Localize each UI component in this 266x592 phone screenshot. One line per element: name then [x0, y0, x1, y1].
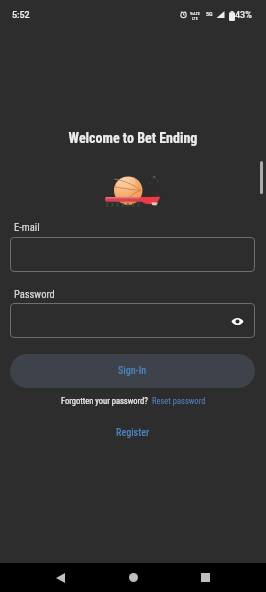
- staticText: Forgotten your password?: [61, 396, 148, 406]
- button[interactable]: Show password: [10, 303, 255, 338]
- staticText: Password: [14, 288, 55, 300]
- staticText: 5G: [206, 10, 213, 17]
- button[interactable]: Register: [116, 427, 150, 439]
- button[interactable]: Recent apps: [185, 563, 225, 592]
- staticText: Welcome to Bet Ending: [0, 130, 266, 146]
- staticText: Reset password: [152, 396, 206, 406]
- button[interactable]: Back: [40, 563, 80, 592]
- staticText: 43%: [235, 10, 252, 21]
- staticText: 5:52: [12, 10, 30, 21]
- staticText: VoLTE: [190, 11, 200, 16]
- button[interactable]: Sign-In: [10, 354, 255, 388]
- staticText: Sign-In: [118, 365, 147, 377]
- staticText: Register: [116, 427, 150, 439]
- button[interactable]: Reset password: [152, 396, 206, 406]
- button[interactable]: Home: [113, 563, 153, 592]
- staticText: E-mail: [14, 221, 40, 233]
- button[interactable]: Show password: [226, 310, 248, 332]
- staticText: LTE: [192, 16, 198, 21]
- button[interactable]: [10, 237, 255, 272]
